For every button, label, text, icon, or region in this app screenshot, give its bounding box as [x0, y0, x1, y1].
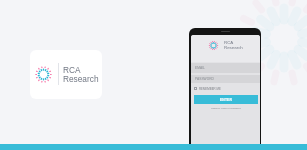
staticText: PASSWORD	[195, 77, 214, 81]
button[interactable]: ENTER	[194, 95, 258, 104]
staticText: EMAIL	[195, 66, 205, 70]
button[interactable]: FORGOT YOUR PASSWORD?	[191, 105, 260, 110]
button[interactable]: EMAIL	[191, 63, 260, 73]
button[interactable]: REMEMBER ME	[194, 85, 221, 92]
staticText: RCA	[63, 65, 81, 74]
staticText: RCA	[224, 40, 234, 45]
staticText: ENTER	[220, 98, 232, 102]
staticText: REMEMBER ME	[199, 87, 221, 90]
button[interactable]: PASSWORD	[191, 75, 260, 83]
staticText: Research	[63, 74, 99, 83]
staticText: FORGOT YOUR PASSWORD?	[211, 107, 241, 109]
staticText: Research	[224, 45, 243, 50]
button[interactable]: RCA	[30, 50, 102, 99]
